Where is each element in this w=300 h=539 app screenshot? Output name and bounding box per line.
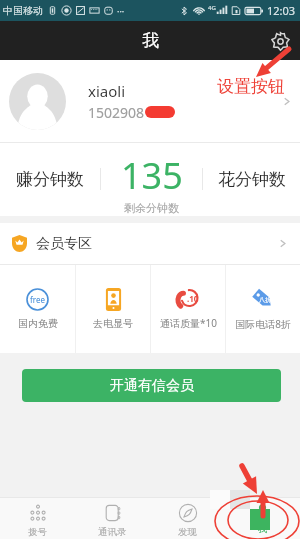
- button[interactable]: 拨号: [0, 498, 75, 538]
- staticText: 我: [142, 30, 159, 51]
- staticText: 12:03: [267, 3, 296, 18]
- button[interactable]: 八折: [226, 287, 300, 331]
- staticText: 发现: [178, 526, 197, 538]
- button[interactable]: 通讯录: [75, 498, 150, 538]
- staticText: 开通有信会员: [110, 377, 194, 395]
- staticText: 花分钟数: [218, 169, 286, 190]
- button[interactable]: 开通有信会员: [22, 369, 281, 402]
- staticText: free: [30, 294, 45, 305]
- button[interactable]: 我: [225, 498, 300, 535]
- button[interactable]: .10: [151, 289, 225, 330]
- staticText: 八折: [259, 296, 271, 304]
- button[interactable]: Settings: [266, 27, 294, 55]
- staticText: xiaoli: [88, 81, 126, 101]
- staticText: 国内免费: [18, 317, 58, 330]
- staticText: 通话质量*10: [160, 316, 217, 330]
- button[interactable]: 赚分钟数: [0, 143, 100, 216]
- staticText: 去电显号: [93, 317, 133, 330]
- button[interactable]: 花分钟数: [203, 143, 300, 216]
- button[interactable]: xiaoli: [0, 60, 300, 143]
- staticText: 会员专区: [36, 235, 92, 253]
- staticText: 4G: [208, 4, 216, 12]
- staticText: 通讯录: [98, 526, 127, 538]
- staticText: ···: [117, 5, 125, 17]
- staticText: 135: [121, 151, 183, 200]
- staticText: 国际电话8折: [235, 317, 291, 331]
- button[interactable]: 会员专区: [0, 223, 300, 264]
- staticText: .10: [187, 293, 199, 304]
- button[interactable]: free: [0, 288, 75, 330]
- button[interactable]: 135: [101, 143, 202, 216]
- button[interactable]: 发现: [150, 498, 225, 538]
- staticText: 赚分钟数: [16, 169, 84, 190]
- staticText: 拨号: [28, 526, 47, 538]
- staticText: 剩余分钟数: [124, 201, 179, 215]
- staticText: 中国移动: [3, 4, 43, 17]
- staticText: 设置按钮: [217, 76, 285, 97]
- button[interactable]: 去电显号: [76, 288, 150, 330]
- staticText: 我: [258, 523, 268, 535]
- staticText: 1502908: [88, 103, 145, 122]
